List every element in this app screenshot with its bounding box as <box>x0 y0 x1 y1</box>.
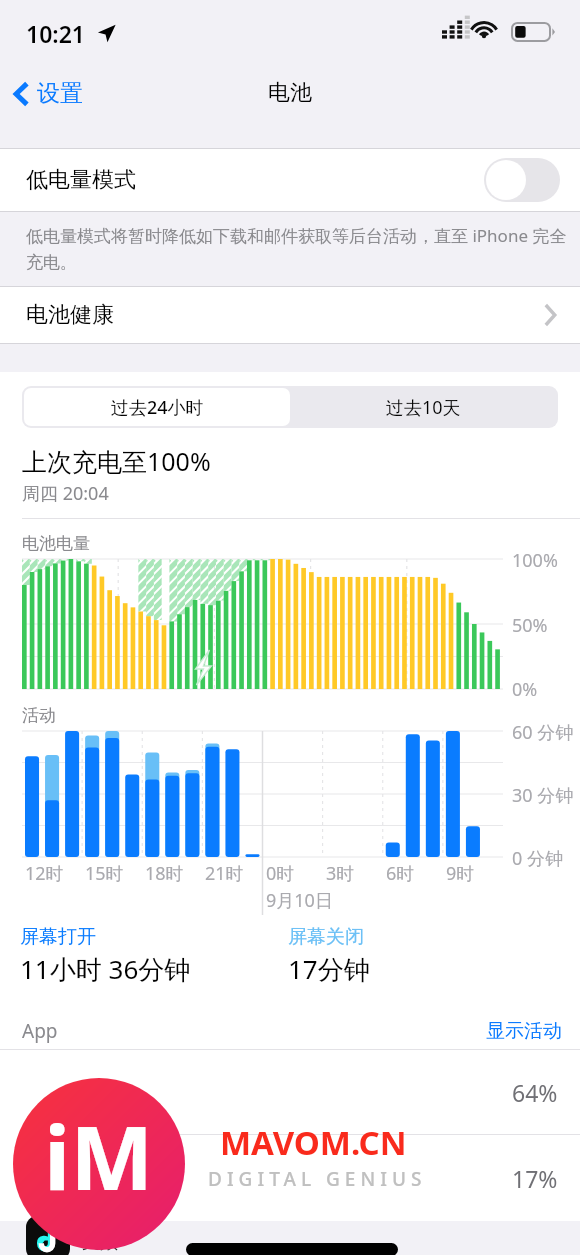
staticText: 周四 20:04 <box>22 481 109 506</box>
button[interactable]: 电池健康 <box>0 287 580 343</box>
staticText: 电池 <box>268 79 312 107</box>
button[interactable]: 设置 <box>0 71 95 116</box>
staticText: 0时 <box>266 861 295 886</box>
button[interactable]: 显示活动 <box>468 1015 580 1047</box>
staticText: 21时 <box>205 861 244 886</box>
button[interactable]: 17% <box>0 1135 580 1221</box>
staticText: 12时 <box>25 861 64 886</box>
staticText: MAVOM.CN <box>220 1120 407 1165</box>
staticText: iM <box>44 1096 154 1216</box>
staticText: 50% <box>512 613 548 638</box>
staticText: 11小时 36分钟 <box>20 951 191 987</box>
staticText: 显示活动 <box>486 1019 562 1043</box>
staticText: App <box>22 1018 58 1044</box>
staticText: 10:21 <box>26 18 85 49</box>
button[interactable]: 低电量模式开关 <box>484 158 560 202</box>
staticText: 活动 <box>22 705 56 726</box>
staticText: 3时 <box>326 861 355 886</box>
staticText: 低电量模式 <box>26 166 136 194</box>
staticText: 设置 <box>37 79 83 108</box>
staticText: 17% <box>512 1163 558 1194</box>
staticText: 64% <box>512 1077 558 1108</box>
staticText: DIGITAL GENIUS <box>208 1166 427 1192</box>
button[interactable]: 64% <box>0 1050 580 1134</box>
button[interactable]: 低电量模式 <box>0 149 580 211</box>
staticText: 电池健康 <box>26 301 114 329</box>
staticText: 6时 <box>386 861 415 886</box>
staticText: 30 分钟 <box>512 783 574 808</box>
staticText: 低电量模式将暂时降低如下载和邮件获取等后台活动，直至 iPhone 完全充电。 <box>26 224 570 273</box>
staticText: 过去24小时 <box>111 395 204 420</box>
staticText: 文频 <box>82 1231 118 1254</box>
staticText: 电池电量 <box>22 533 90 554</box>
staticText: 过去10天 <box>386 395 461 420</box>
staticText: 0 分钟 <box>512 846 563 871</box>
staticText: 60 分钟 <box>512 720 574 745</box>
button[interactable]: 过去10天 <box>290 388 556 426</box>
staticText: 17分钟 <box>288 951 370 987</box>
staticText: 9月10日 <box>266 888 333 913</box>
staticText: 屏幕打开 <box>20 925 96 949</box>
staticText: 100% <box>512 548 558 573</box>
staticText: 9时 <box>446 861 475 886</box>
staticText: 上次充电至100% <box>22 444 211 478</box>
button[interactable]: 过去24小时 <box>24 388 290 426</box>
staticText: 屏幕关闭 <box>288 925 364 949</box>
staticText: 0% <box>512 677 538 702</box>
staticText: 18时 <box>145 861 184 886</box>
staticText: 15时 <box>85 861 124 886</box>
